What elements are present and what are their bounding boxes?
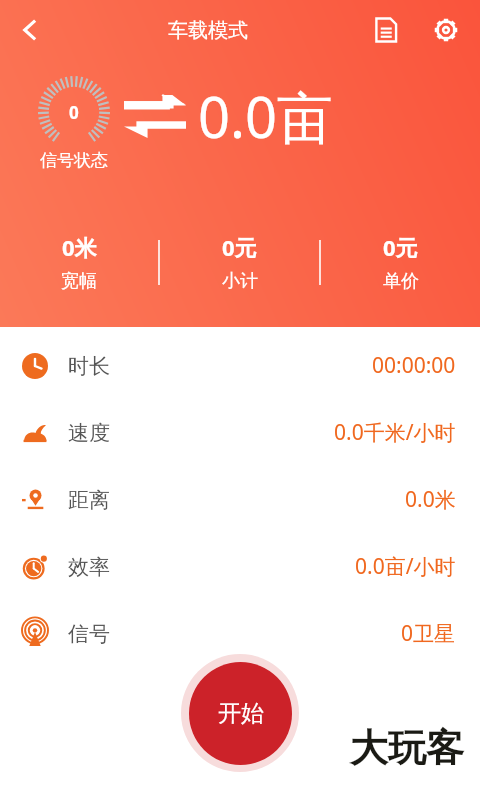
staticText: 车载模式 — [168, 18, 248, 43]
staticText: 0米 — [62, 232, 97, 262]
staticText: 0元 — [383, 232, 418, 262]
staticText: 宽幅 — [61, 270, 97, 293]
button[interactable]: 信号 — [0, 600, 480, 667]
staticText: 时长 — [68, 353, 110, 379]
staticText: 0.0千米/小时 — [334, 418, 456, 447]
staticText: 速度 — [68, 420, 110, 446]
staticText: 0卫星 — [401, 619, 456, 648]
button[interactable]: 0米 — [0, 232, 158, 293]
button[interactable]: 0元 — [160, 232, 319, 293]
staticText: 单价 — [383, 270, 419, 293]
button[interactable]: 距离 — [0, 466, 480, 533]
staticText: 小计 — [222, 270, 258, 293]
staticText: 0元 — [222, 232, 257, 262]
staticText: 0 — [69, 101, 79, 124]
staticText: 距离 — [68, 487, 110, 513]
staticText: 大玩客 — [350, 724, 464, 772]
staticText: 0.0亩/小时 — [355, 552, 456, 581]
staticText: 00:00:00 — [372, 351, 456, 380]
staticText: 0.0亩 — [198, 78, 334, 154]
staticText: 效率 — [68, 554, 110, 580]
button[interactable]: Back — [6, 6, 54, 54]
button[interactable]: 速度 — [0, 399, 480, 466]
button[interactable]: 开始 — [181, 654, 299, 772]
button[interactable]: Settings — [422, 6, 470, 54]
button[interactable]: 0元 — [321, 232, 480, 293]
staticText: 信号 — [68, 621, 110, 647]
staticText: 开始 — [218, 699, 264, 728]
staticText: 0.0米 — [405, 485, 456, 514]
staticText: 信号状态 — [40, 150, 108, 171]
button[interactable]: 时长 — [0, 332, 480, 399]
button[interactable]: 效率 — [0, 533, 480, 600]
button[interactable]: Records — [362, 6, 410, 54]
